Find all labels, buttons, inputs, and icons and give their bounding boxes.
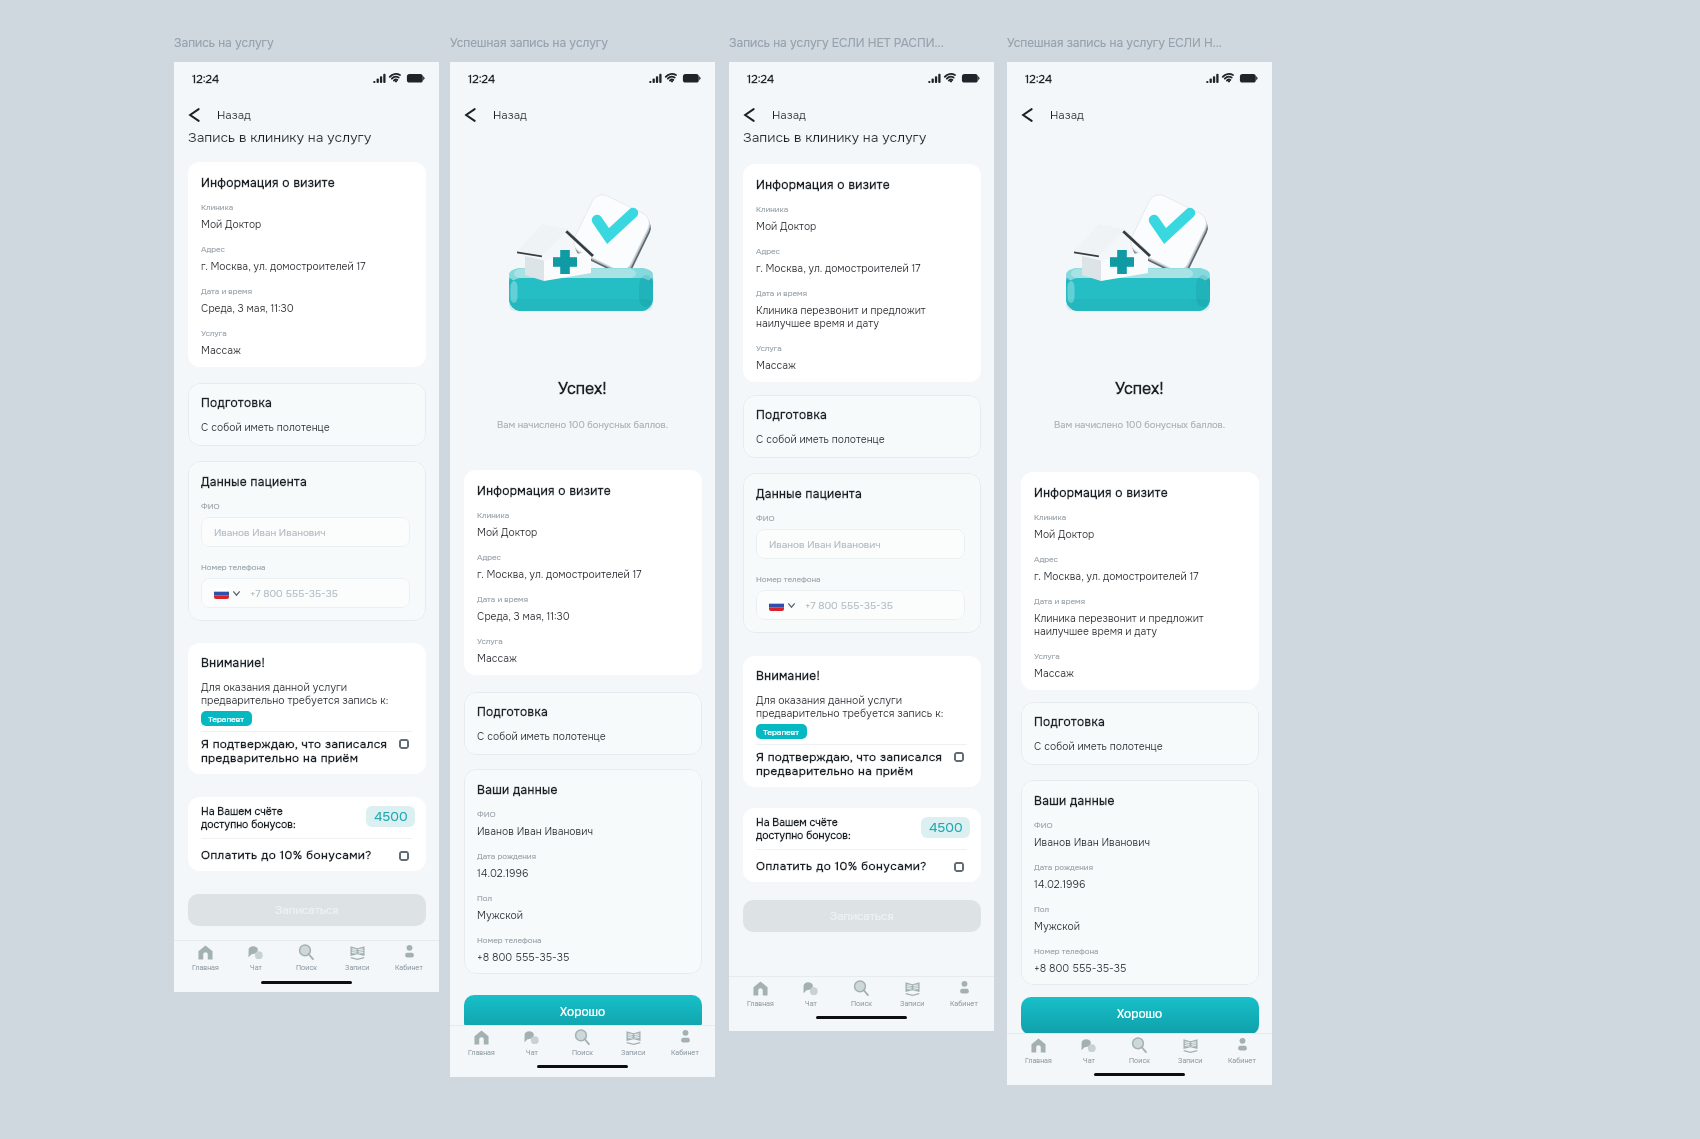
button[interactable]: Главная: [180, 941, 231, 973]
staticText: На Вашем счёте доступно бонусов:: [756, 816, 851, 842]
staticText: Оплатить до 10% бонусами?: [201, 848, 372, 863]
staticText: На Вашем счёте доступно бонусов:: [201, 805, 296, 831]
staticText: Информация о визите: [1034, 485, 1168, 500]
staticText: Услуга: [201, 328, 227, 338]
staticText: Мой Доктор: [477, 526, 538, 539]
button[interactable]: Чат: [785, 977, 836, 1009]
staticText: Я подтверждаю, что записался предварител…: [201, 737, 388, 766]
staticText: Поиск: [572, 1048, 593, 1057]
button[interactable]: Записи: [887, 977, 938, 1009]
staticText: Поиск: [1129, 1056, 1150, 1065]
staticText: Клиника: [201, 202, 234, 212]
button[interactable]: [399, 851, 417, 869]
button[interactable]: Главная: [1013, 1034, 1064, 1066]
staticText: Клиника перезвонит и предложит наилучшее…: [1034, 612, 1204, 638]
staticText: Иванов Иван Иванович: [477, 825, 593, 838]
button[interactable]: Кабинет: [383, 941, 434, 973]
staticText: Терапевт: [208, 714, 245, 724]
staticText: Клиника перезвонит и предложит наилучшее…: [756, 304, 926, 330]
button[interactable]: Поиск: [281, 941, 332, 973]
button[interactable]: Иванов Иван Иванович: [756, 529, 965, 559]
staticText: Успех!: [1115, 378, 1164, 398]
staticText: Данные пациента: [201, 474, 307, 489]
staticText: Мой Доктор: [756, 220, 817, 233]
staticText: Успех!: [558, 378, 607, 398]
staticText: Адрес: [1034, 554, 1058, 564]
staticText: Поиск: [296, 963, 317, 972]
staticText: Терапевт: [763, 727, 800, 737]
staticText: Записаться: [275, 903, 339, 918]
staticText: 12:24: [747, 72, 775, 87]
staticText: Массаж: [201, 344, 241, 357]
staticText: Главная: [747, 999, 774, 1008]
other: Назад: [189, 108, 200, 122]
button[interactable]: Записи: [608, 1026, 659, 1058]
staticText: Пол: [477, 893, 493, 903]
button[interactable]: Главная: [735, 977, 786, 1009]
staticText: Мужской: [1034, 920, 1080, 933]
staticText: Главная: [192, 963, 219, 972]
staticText: Внимание!: [756, 668, 821, 683]
staticText: С собой иметь полотенце: [756, 433, 885, 446]
staticText: Вам начислено 100 бонусных баллов.: [1054, 419, 1226, 431]
button[interactable]: [954, 752, 972, 770]
button[interactable]: Кабинет: [659, 1026, 710, 1058]
staticText: Дата рождения: [477, 851, 536, 861]
staticText: С собой иметь полотенце: [1034, 740, 1163, 753]
staticText: Подготовка: [756, 407, 827, 422]
staticText: ФИО: [201, 501, 220, 511]
staticText: 14.02.1996: [477, 867, 529, 880]
staticText: Среда, 3 мая, 11:30: [477, 610, 570, 623]
button[interactable]: Хорошо: [1021, 997, 1259, 1035]
button[interactable]: Назад: [1015, 104, 1087, 126]
button[interactable]: Чат: [506, 1026, 557, 1058]
button[interactable]: +7 800 555-35-35: [201, 578, 410, 608]
button[interactable]: Назад: [737, 104, 809, 126]
button[interactable]: Хорошо: [464, 995, 702, 1033]
staticText: Дата и время: [201, 286, 252, 296]
staticText: ФИО: [756, 513, 775, 523]
staticText: Для оказания данной услуги предварительн…: [756, 694, 944, 720]
other: Назад: [465, 108, 476, 122]
button[interactable]: Назад: [458, 104, 530, 126]
button[interactable]: Поиск: [836, 977, 887, 1009]
staticText: Кабинет: [1228, 1056, 1256, 1065]
button[interactable]: Терапевт: [201, 711, 252, 726]
button[interactable]: Кабинет: [1216, 1034, 1267, 1066]
staticText: Услуга: [1034, 651, 1060, 661]
staticText: Записи: [1178, 1056, 1203, 1065]
button[interactable]: Главная: [456, 1026, 507, 1058]
staticText: Кабинет: [950, 999, 978, 1008]
staticText: Запись в клинику на услугу: [743, 129, 927, 147]
button[interactable]: Поиск: [557, 1026, 608, 1058]
staticText: Клиника: [1034, 512, 1067, 522]
staticText: Услуга: [756, 343, 782, 353]
button[interactable]: Терапевт: [756, 724, 807, 739]
staticText: Успешная запись на услугу: [450, 35, 608, 50]
button[interactable]: Иванов Иван Иванович: [201, 517, 410, 547]
staticText: Для оказания данной услуги предварительн…: [201, 681, 389, 707]
staticText: Номер телефона: [477, 935, 542, 945]
button[interactable]: Кабинет: [938, 977, 989, 1009]
button[interactable]: Записаться: [743, 900, 981, 932]
staticText: Данные пациента: [756, 486, 862, 501]
staticText: Информация о визите: [201, 175, 335, 190]
button[interactable]: Записаться: [188, 894, 426, 926]
staticText: Хорошо: [1117, 1006, 1163, 1021]
button[interactable]: +7 800 555-35-35: [756, 590, 965, 620]
staticText: Я подтверждаю, что записался предварител…: [756, 750, 943, 779]
button[interactable]: Записи: [1165, 1034, 1216, 1066]
button[interactable]: Чат: [1063, 1034, 1114, 1066]
button[interactable]: [954, 862, 972, 880]
staticText: ФИО: [1034, 820, 1053, 830]
staticText: Чат: [526, 1048, 538, 1057]
button[interactable]: Поиск: [1114, 1034, 1165, 1066]
button[interactable]: Чат: [230, 941, 281, 973]
button[interactable]: Записи: [332, 941, 383, 973]
staticText: Оплатить до 10% бонусами?: [756, 859, 927, 874]
button[interactable]: [399, 739, 417, 757]
staticText: Запись в клинику на услугу: [188, 129, 372, 147]
staticText: Записи: [345, 963, 370, 972]
button[interactable]: Назад: [182, 104, 254, 126]
staticText: Массаж: [477, 652, 517, 665]
